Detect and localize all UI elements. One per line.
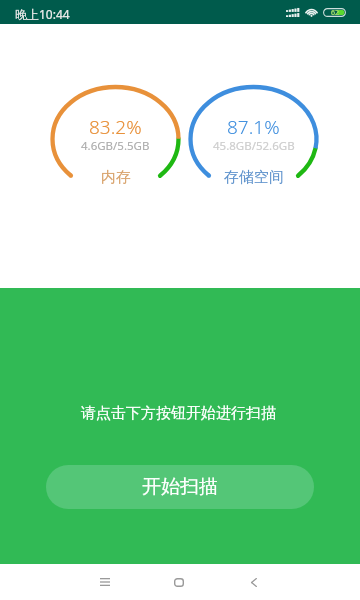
staticText: 62: [331, 8, 340, 17]
button[interactable]: Recent apps: [81, 564, 129, 600]
staticText: 内存: [101, 168, 131, 187]
button[interactable]: Home: [155, 564, 203, 600]
staticText: 87.1%: [227, 114, 280, 140]
button[interactable]: 开始扫描: [46, 465, 314, 509]
button[interactable]: Back: [230, 564, 278, 600]
button[interactable]: 83.2%: [46, 87, 185, 217]
staticText: 4.6GB/5.5GB: [81, 138, 150, 154]
staticText: 开始扫描: [142, 475, 218, 499]
staticText: 存储空间: [224, 168, 284, 187]
staticText: 请点击下方按钮开始进行扫描: [81, 404, 276, 423]
button[interactable]: 87.1%: [184, 87, 323, 217]
staticText: 83.2%: [89, 114, 142, 140]
staticText: 晚上10:44: [15, 6, 70, 22]
staticText: 45.8GB/52.6GB: [213, 138, 295, 154]
